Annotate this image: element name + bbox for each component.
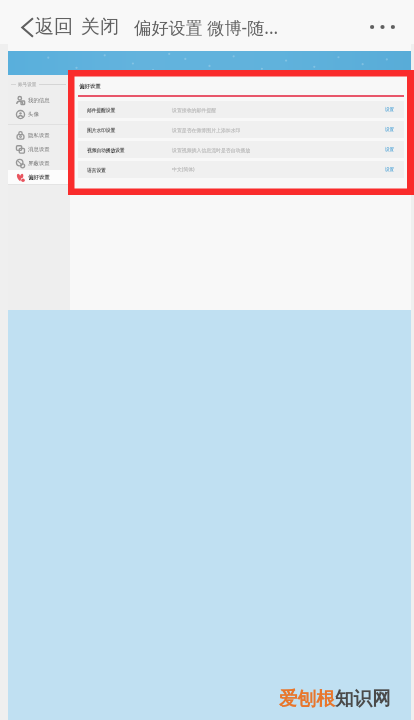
staticText: 设置视频插入信息流时是否自动播放 (172, 147, 251, 153)
button[interactable]: 设置 (385, 107, 395, 113)
staticText: 偏好设置 微博-随... (134, 16, 279, 39)
staticText: 头像 (28, 111, 39, 118)
button[interactable]: 视频自动播放设置 (78, 141, 404, 158)
staticText: 中文(简体) (172, 166, 195, 173)
button[interactable]: 关闭 (81, 15, 119, 39)
button[interactable]: 头像 (8, 107, 70, 121)
staticText: 设置接收的邮件提醒 (172, 107, 217, 113)
staticText: 邮件提醒设置 (87, 107, 116, 113)
button[interactable]: 图片水印设置 (78, 121, 404, 138)
staticText: 爱刨根 (279, 687, 335, 710)
button[interactable]: 屏蔽设置 (8, 156, 70, 170)
button[interactable]: 消息设置 (8, 142, 70, 156)
button[interactable]: 偏好设置 (8, 170, 70, 184)
staticText: 图片水印设置 (87, 127, 116, 133)
staticText: 偏好设置 (28, 174, 50, 181)
button[interactable]: More options (365, 10, 399, 44)
button[interactable]: 我的信息 (8, 93, 70, 107)
staticText: 视频自动播放设置 (87, 147, 125, 153)
staticText: 账号设置 (18, 82, 37, 88)
staticText: 我的信息 (28, 97, 50, 104)
button[interactable]: 设置 (385, 167, 395, 173)
button[interactable]: 隐私设置 (8, 128, 70, 142)
staticText: 设置是否在微博图片上添加水印 (172, 127, 241, 133)
staticText: 偏好设置 (79, 83, 101, 90)
staticText: 隐私设置 (28, 132, 50, 139)
staticText: 返回 (35, 15, 73, 39)
button[interactable]: 设置 (385, 147, 395, 153)
button[interactable]: 语言设置 (78, 161, 404, 178)
button[interactable]: 邮件提醒设置 (78, 101, 404, 118)
staticText: 语言设置 (87, 167, 106, 173)
button[interactable]: 设置 (385, 127, 395, 133)
button[interactable]: 返回 (21, 15, 73, 39)
staticText: 消息设置 (28, 146, 50, 153)
staticText: 知识网 (335, 687, 391, 710)
staticText: 屏蔽设置 (28, 160, 50, 167)
